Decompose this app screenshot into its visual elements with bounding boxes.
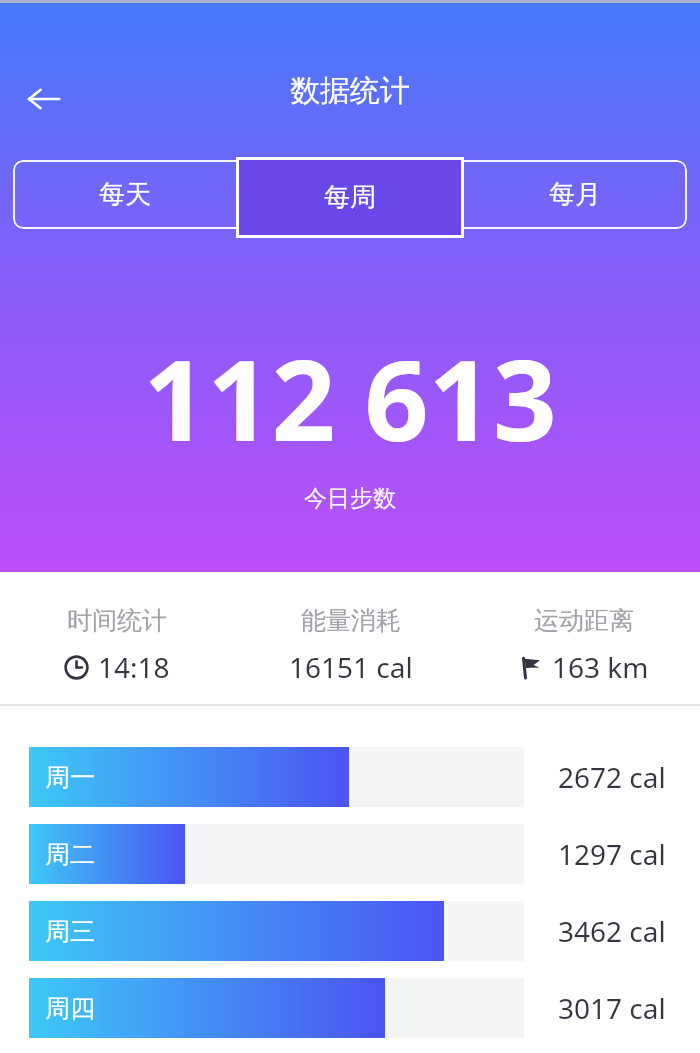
staticText: 数据统计 (0, 72, 700, 110)
staticText: 周一 (45, 762, 95, 793)
staticText: 周四 (45, 993, 95, 1024)
staticText: 今日步数 (304, 484, 396, 513)
button[interactable]: 每周 (236, 157, 464, 238)
staticText: 3462 cal (558, 912, 666, 950)
staticText: 3017 cal (558, 989, 666, 1027)
staticText: 14:18 (98, 648, 170, 686)
button[interactable]: 周二 (0, 824, 700, 884)
staticText: 周二 (45, 839, 95, 870)
button[interactable]: 每天 (13, 160, 237, 229)
button[interactable]: 每月 (462, 160, 687, 229)
staticText: 1297 cal (558, 835, 666, 873)
staticText: 每周 (324, 181, 376, 214)
button[interactable]: 周四 (0, 978, 700, 1038)
button[interactable]: 周三 (0, 901, 700, 961)
staticText: 运动距离 (534, 605, 634, 636)
button[interactable]: 周一 (0, 747, 700, 807)
staticText: 16151 cal (289, 648, 413, 686)
staticText: 周三 (45, 916, 95, 947)
staticText: 163 km (552, 648, 649, 686)
button[interactable]: Back (20, 75, 68, 123)
staticText: 112 613 (143, 321, 557, 474)
staticText: 每天 (99, 178, 151, 211)
staticText: 每月 (549, 178, 601, 211)
staticText: 能量消耗 (301, 605, 401, 636)
staticText: 时间统计 (67, 605, 167, 636)
staticText: 2672 cal (558, 758, 666, 796)
